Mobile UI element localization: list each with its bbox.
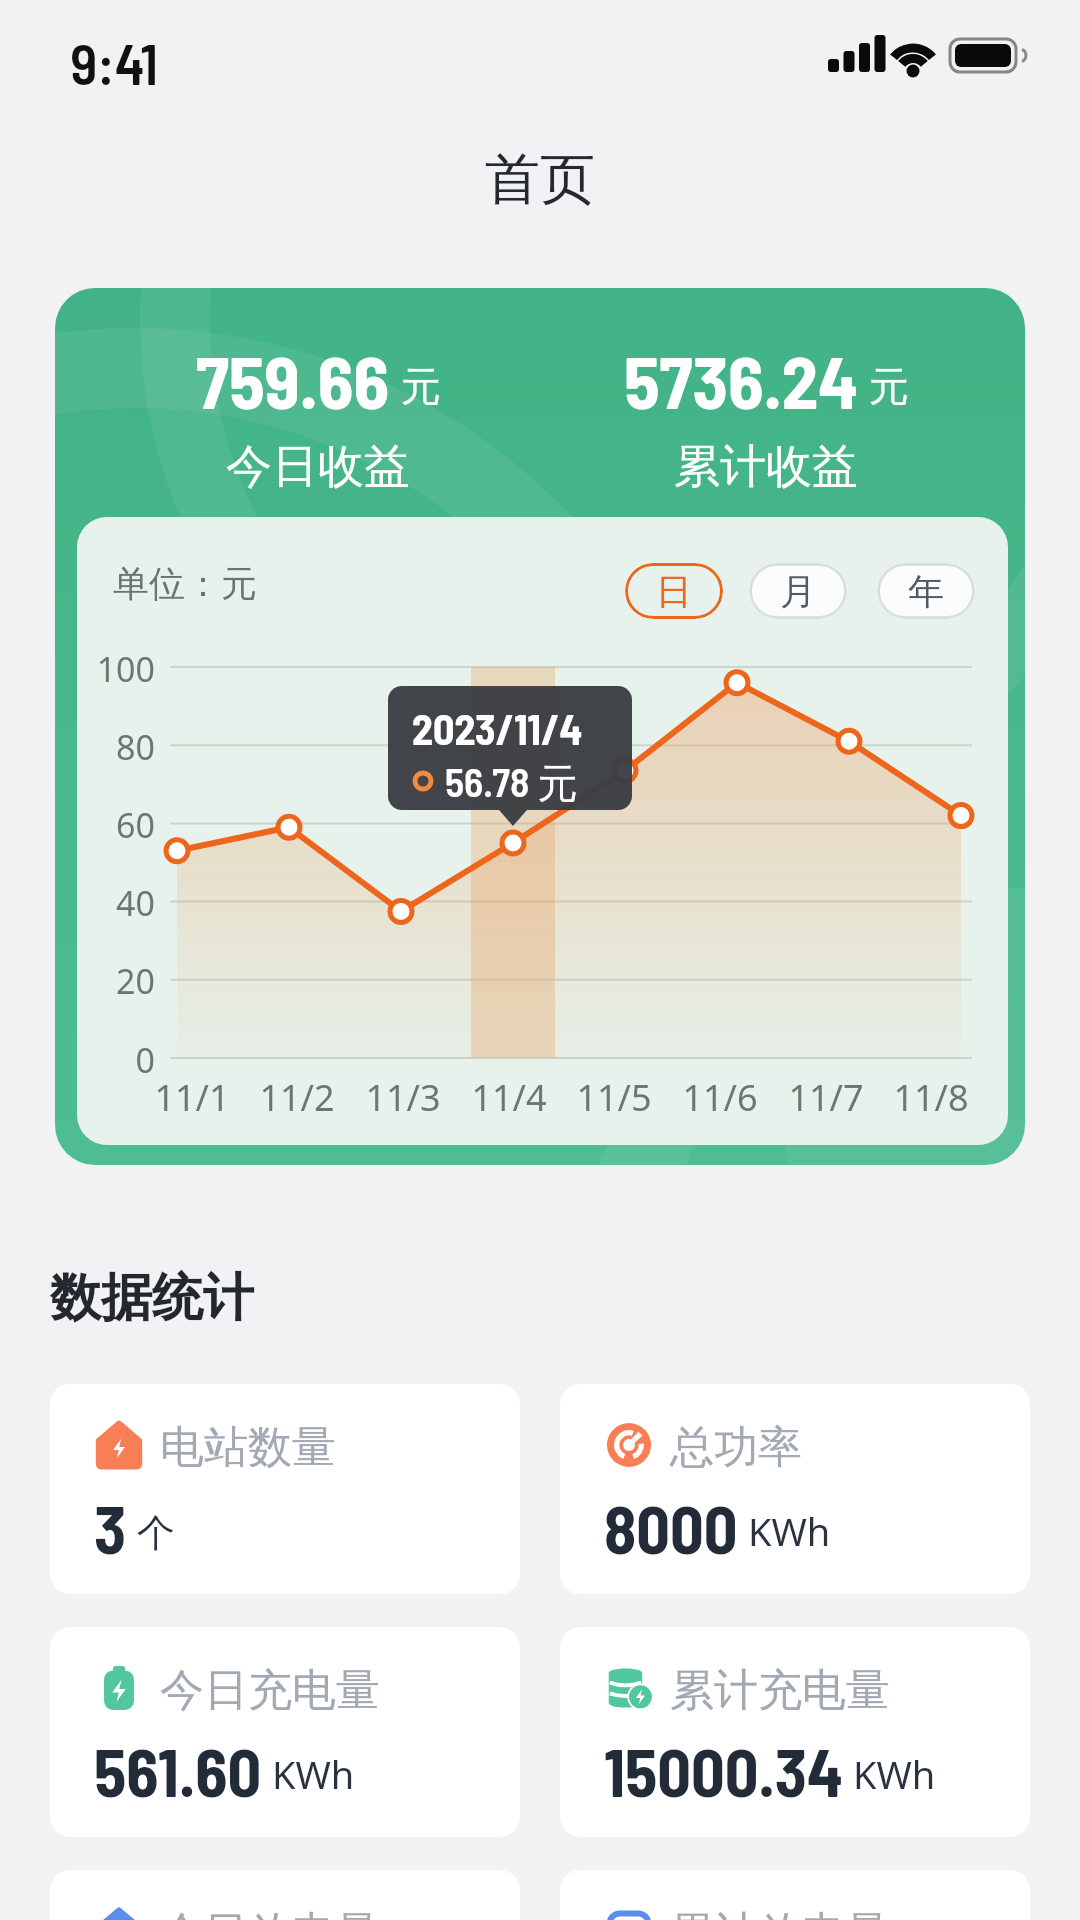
- staticText: 11/8: [891, 1073, 971, 1122]
- staticText: 15000.34: [604, 1731, 843, 1810]
- staticText: 56.78 元: [445, 757, 578, 809]
- button[interactable]: 月: [749, 563, 847, 619]
- staticText: 累计收益: [674, 438, 858, 496]
- staticText: 总功率: [670, 1420, 802, 1475]
- staticText: KWh: [738, 1505, 831, 1557]
- staticText: 11/5: [574, 1073, 654, 1122]
- staticText: 今日充电量: [160, 1663, 380, 1718]
- staticText: 11/3: [363, 1073, 443, 1122]
- staticText: 电站数量: [160, 1420, 336, 1475]
- staticText: 60: [85, 802, 155, 848]
- staticText: 月: [780, 569, 816, 614]
- staticText: 5736.24: [624, 336, 858, 424]
- button[interactable]: 累计放电量: [560, 1870, 1030, 1920]
- button[interactable]: 电站数量: [50, 1384, 520, 1594]
- staticText: 单位：元: [113, 561, 257, 606]
- staticText: 561.60: [94, 1731, 262, 1810]
- staticText: 11/6: [680, 1073, 760, 1122]
- staticText: KWh: [262, 1748, 355, 1800]
- staticText: 日: [656, 569, 692, 614]
- staticText: 759.66: [196, 336, 390, 424]
- staticText: 年: [908, 569, 944, 614]
- button[interactable]: 总功率: [560, 1384, 1030, 1594]
- staticText: 100: [85, 646, 155, 692]
- staticText: 40: [85, 880, 155, 926]
- staticText: 11/2: [257, 1073, 337, 1122]
- staticText: 20: [85, 958, 155, 1004]
- staticText: 累计放电量: [670, 1906, 890, 1920]
- staticText: 8000: [604, 1488, 738, 1567]
- button[interactable]: 今日放电量: [50, 1870, 520, 1920]
- staticText: 今日收益: [226, 438, 410, 496]
- button[interactable]: 日: [625, 563, 723, 619]
- staticText: 累计充电量: [670, 1663, 890, 1718]
- staticText: 2023/11/4: [412, 703, 583, 753]
- button[interactable]: 累计充电量: [560, 1627, 1030, 1837]
- staticText: 0: [85, 1037, 155, 1083]
- staticText: 11/4: [469, 1073, 549, 1122]
- staticText: 11/7: [786, 1073, 866, 1122]
- staticText: 80: [85, 724, 155, 770]
- staticText: 9:41: [70, 28, 159, 96]
- staticText: 3: [94, 1488, 127, 1567]
- button[interactable]: 年: [877, 563, 975, 619]
- staticText: 11/1: [152, 1073, 232, 1122]
- staticText: 元: [858, 357, 909, 412]
- button[interactable]: 今日充电量: [50, 1627, 520, 1837]
- staticText: 元: [390, 357, 441, 412]
- staticText: KWh: [843, 1748, 936, 1800]
- staticText: 数据统计: [50, 1266, 254, 1330]
- staticText: 个: [127, 1505, 175, 1557]
- staticText: 首页: [0, 145, 1080, 214]
- staticText: 今日放电量: [160, 1906, 380, 1920]
